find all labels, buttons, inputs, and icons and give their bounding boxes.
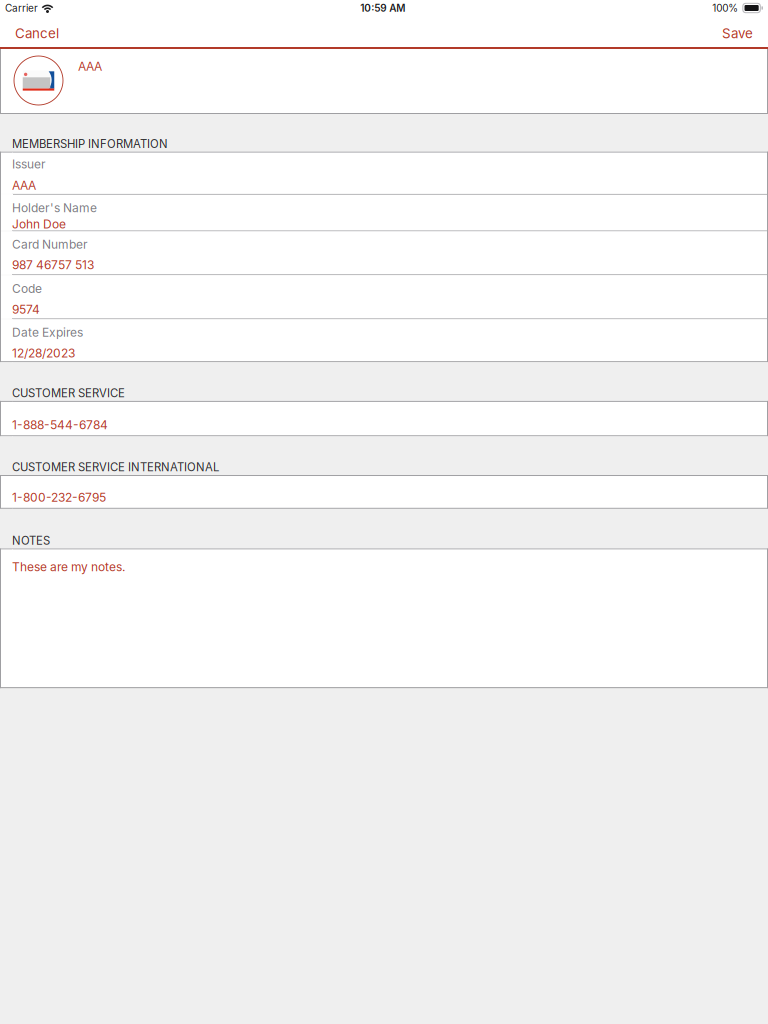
- staticText: Cancel: [15, 25, 59, 41]
- staticText: AAA: [12, 178, 36, 193]
- staticText: MEMBERSHIP INFORMATION: [12, 137, 168, 151]
- staticText: Card Number: [12, 237, 88, 252]
- staticText: CUSTOMER SERVICE: [12, 386, 125, 400]
- staticText: Save: [722, 25, 753, 41]
- staticText: These are my notes.: [12, 559, 125, 574]
- button[interactable]: 1-800-232-6795: [0, 475, 768, 509]
- button[interactable]: Save: [707, 20, 768, 47]
- staticText: 1-888-544-6784: [12, 418, 108, 432]
- staticText: NOTES: [12, 534, 50, 547]
- staticText: 987 46757 513: [12, 258, 94, 272]
- staticText: Issuer: [12, 157, 46, 171]
- staticText: Holder's Name: [12, 201, 97, 215]
- staticText: 9574: [12, 302, 40, 317]
- staticText: Carrier: [5, 2, 38, 14]
- button[interactable]: 1-888-544-6784: [0, 401, 768, 436]
- staticText: AAA: [78, 59, 102, 73]
- staticText: 1-800-232-6795: [12, 490, 106, 505]
- staticText: Code: [12, 281, 42, 296]
- staticText: 10:59 AM: [360, 2, 405, 14]
- staticText: John Doe: [12, 217, 66, 231]
- staticText: CUSTOMER SERVICE INTERNATIONAL: [12, 460, 219, 474]
- staticText: 100%: [712, 2, 738, 14]
- staticText: 12/28/2023: [12, 346, 75, 360]
- button[interactable]: Cancel: [0, 20, 74, 47]
- staticText: Date Expires: [12, 325, 83, 340]
